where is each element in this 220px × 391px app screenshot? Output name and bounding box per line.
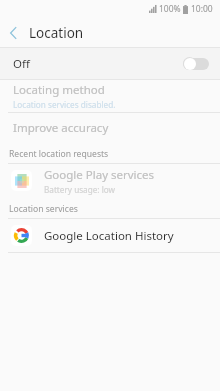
button[interactable]: Off — [0, 48, 220, 79]
staticText: Google Location History — [44, 228, 174, 244]
staticText: Recent location requests — [9, 148, 109, 160]
staticText: Locating method — [13, 82, 105, 98]
staticText: Improve accuracy — [13, 120, 109, 136]
staticText: Google Play services — [44, 167, 155, 183]
staticText: Location — [29, 24, 84, 42]
staticText: 100% — [159, 3, 181, 15]
button[interactable]: Back — [0, 18, 26, 47]
button[interactable]: Location toggle, off — [183, 57, 209, 70]
staticText: Off — [13, 56, 30, 72]
staticText: 10:00 — [191, 3, 213, 15]
button[interactable]: Improve accuracy — [0, 113, 220, 142]
staticText: Location services — [9, 203, 78, 215]
button[interactable]: Google Location History — [0, 219, 220, 252]
button[interactable]: Google Play services — [0, 164, 220, 197]
staticText: Location services disabled. — [13, 99, 116, 110]
button[interactable]: Locating method — [0, 80, 220, 112]
staticText: Battery usage: low — [44, 184, 116, 195]
